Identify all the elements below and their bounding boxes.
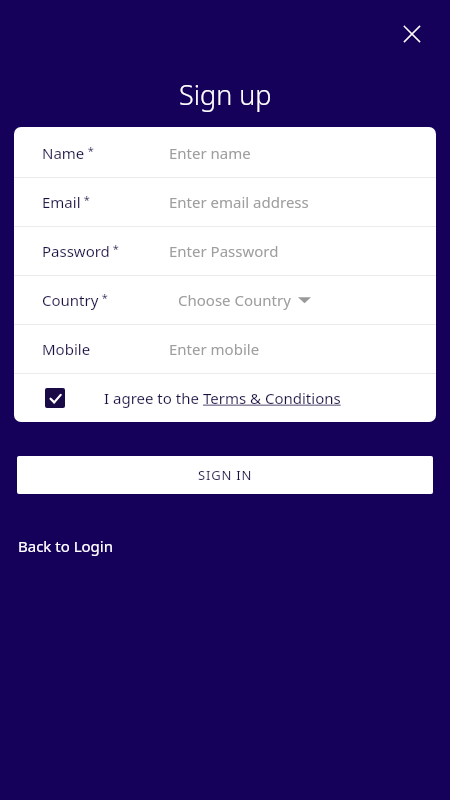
staticText: SIGN IN bbox=[198, 466, 253, 484]
staticText: Password bbox=[42, 241, 110, 261]
staticText: Name bbox=[42, 143, 85, 163]
staticText: * bbox=[81, 192, 90, 207]
staticText: * bbox=[85, 143, 94, 158]
button[interactable]: I agree to the bbox=[14, 374, 436, 422]
staticText: Choose Country bbox=[178, 290, 291, 310]
staticText: I agree to the bbox=[104, 388, 203, 408]
staticText: Enter email address bbox=[169, 192, 309, 212]
button[interactable]: SIGN IN bbox=[17, 456, 433, 494]
button[interactable]: Back to Login bbox=[18, 536, 113, 556]
staticText: Mobile bbox=[42, 339, 91, 359]
staticText: Country bbox=[42, 290, 99, 310]
staticText: Enter mobile bbox=[169, 339, 260, 359]
staticText: Terms & Conditions bbox=[203, 388, 341, 408]
staticText: Enter Password bbox=[169, 241, 279, 261]
button[interactable]: Close bbox=[396, 18, 428, 50]
button[interactable]: Email bbox=[14, 178, 436, 227]
staticText: Email bbox=[42, 192, 81, 212]
button[interactable]: Password bbox=[14, 227, 436, 276]
staticText: * bbox=[110, 241, 119, 256]
button[interactable]: Country bbox=[14, 276, 436, 325]
staticText: Enter name bbox=[169, 143, 251, 163]
staticText: * bbox=[99, 290, 108, 305]
staticText: Sign up bbox=[179, 76, 272, 113]
staticText: Back to Login bbox=[18, 536, 113, 556]
button[interactable]: Mobile bbox=[14, 325, 436, 374]
button[interactable]: Name bbox=[14, 129, 436, 178]
